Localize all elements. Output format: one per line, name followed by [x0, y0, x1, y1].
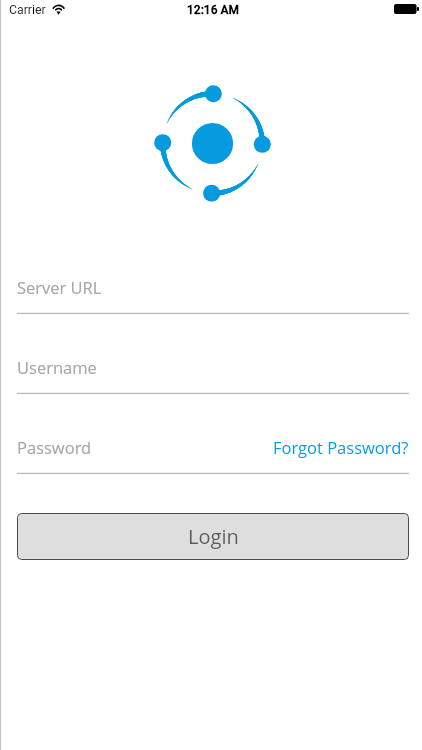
staticText: Server URL — [17, 276, 102, 298]
staticText: Username — [17, 356, 97, 378]
other: Wi-Fi — [52, 3, 66, 14]
button[interactable]: Login — [17, 513, 409, 560]
staticText: Password — [17, 436, 92, 458]
staticText: Carrier — [9, 3, 46, 17]
staticText: Login — [188, 523, 239, 550]
staticText: 12:16 AM — [187, 3, 239, 17]
button[interactable]: Forgot Password? — [265, 437, 409, 475]
button[interactable]: Server URL — [17, 277, 409, 315]
button[interactable]: Password — [17, 437, 257, 475]
button[interactable]: Username — [17, 357, 409, 395]
staticText: Forgot Password? — [273, 436, 409, 458]
